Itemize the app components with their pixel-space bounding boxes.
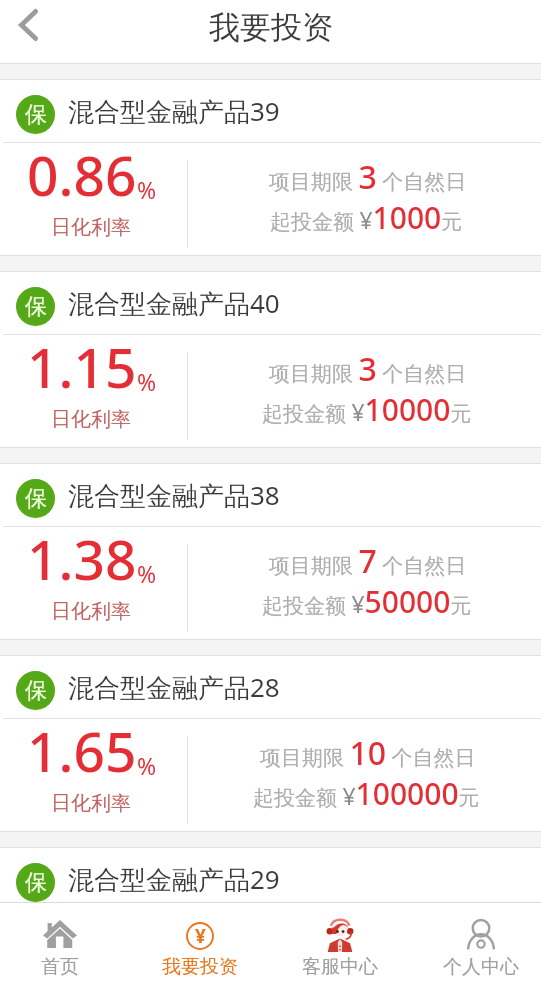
- button[interactable]: 保: [0, 80, 541, 255]
- staticText: 1.80: [27, 905, 137, 976]
- staticText: 日化利率: [51, 407, 131, 432]
- staticText: ¥: [195, 923, 206, 949]
- staticText: 项目期限 10 个自然日: [260, 731, 476, 775]
- button[interactable]: 保: [0, 656, 541, 831]
- staticText: 起投金额 ¥10000元: [262, 389, 472, 430]
- button[interactable]: 保: [0, 848, 541, 982]
- staticText: 个人中心: [443, 955, 519, 979]
- staticText: 保: [25, 101, 47, 129]
- staticText: 1.15: [27, 329, 137, 404]
- staticText: 保: [25, 485, 47, 513]
- staticText: 保: [25, 293, 47, 321]
- button[interactable]: 客服中心: [278, 903, 402, 982]
- staticText: 混合型金融产品28: [68, 669, 280, 705]
- staticText: 1.65: [27, 713, 137, 788]
- staticText: 项目期限 7 个自然日: [269, 539, 467, 583]
- staticText: 项目期限 3 个自然日: [269, 155, 467, 199]
- staticText: %: [137, 558, 157, 589]
- button[interactable]: 保: [0, 464, 541, 639]
- staticText: 日化利率: [51, 215, 131, 240]
- staticText: 1.38: [27, 521, 137, 596]
- staticText: 保: [25, 869, 47, 897]
- staticText: 起投金额 ¥50000元: [262, 581, 472, 622]
- staticText: 客服中心: [302, 955, 378, 979]
- staticText: 首页: [41, 955, 79, 979]
- button[interactable]: 首页: [0, 903, 122, 982]
- staticText: 混合型金融产品39: [68, 93, 280, 129]
- staticText: 我要投资: [162, 955, 238, 979]
- button[interactable]: 个人中心: [419, 903, 541, 982]
- staticText: 起投金额 ¥200000元: [253, 965, 480, 982]
- staticText: 项目期限 3 个自然日: [269, 347, 467, 391]
- staticText: 混合型金融产品29: [68, 861, 280, 897]
- staticText: 日化利率: [51, 791, 131, 816]
- staticText: 起投金额 ¥1000元: [270, 197, 463, 238]
- staticText: %: [137, 366, 157, 397]
- staticText: %: [137, 750, 157, 781]
- staticText: 保: [25, 677, 47, 705]
- button[interactable]: 保: [0, 272, 541, 447]
- staticText: %: [137, 174, 157, 205]
- staticText: 混合型金融产品40: [68, 285, 280, 321]
- button[interactable]: Back: [0, 0, 56, 49]
- staticText: 混合型金融产品38: [68, 477, 280, 513]
- button[interactable]: ¥: [138, 903, 262, 982]
- staticText: 我要投资: [209, 8, 333, 47]
- staticText: 日化利率: [51, 599, 131, 624]
- staticText: 起投金额 ¥100000元: [253, 773, 480, 814]
- staticText: 项目期限 15 个自然日: [260, 923, 476, 967]
- staticText: 0.86: [27, 137, 137, 212]
